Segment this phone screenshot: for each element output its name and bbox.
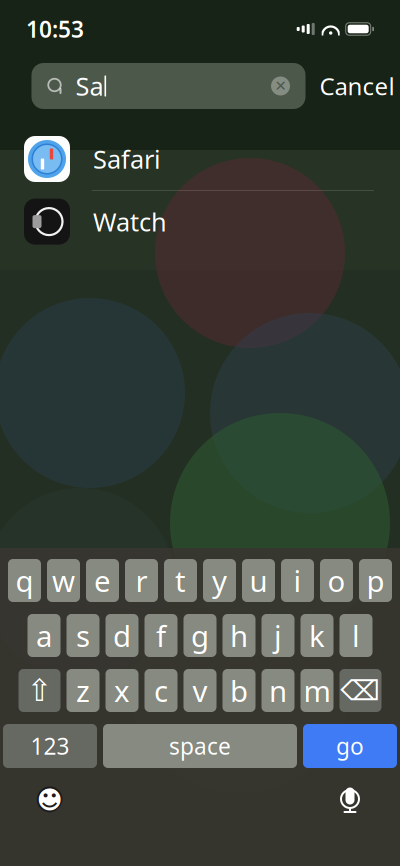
- button[interactable]: r: [125, 559, 158, 602]
- staticText: p: [366, 561, 384, 600]
- staticText: s: [76, 616, 90, 655]
- button[interactable]: o: [320, 559, 353, 602]
- button[interactable]: q: [8, 559, 41, 602]
- staticText: f: [156, 616, 166, 655]
- button[interactable]: c: [144, 669, 177, 712]
- button[interactable]: Cancel: [319, 63, 394, 109]
- button[interactable]: Emoji keyboard: [26, 778, 74, 822]
- staticText: z: [76, 671, 90, 710]
- button[interactable]: i: [281, 559, 314, 602]
- button[interactable]: a: [27, 614, 60, 657]
- button[interactable]: j: [261, 614, 294, 657]
- staticText: j: [274, 616, 282, 655]
- staticText: 10:53: [26, 14, 84, 44]
- staticText: x: [114, 671, 130, 710]
- staticText: e: [94, 561, 111, 600]
- button[interactable]: Shift: [18, 669, 60, 712]
- button[interactable]: e: [86, 559, 119, 602]
- button[interactable]: 123: [3, 724, 97, 768]
- button[interactable]: Watch: [0, 191, 400, 253]
- staticText: o: [327, 561, 345, 600]
- staticText: Sa: [75, 69, 103, 103]
- button[interactable]: x: [105, 669, 138, 712]
- staticText: b: [230, 671, 248, 710]
- button[interactable]: Safari: [0, 128, 400, 191]
- button[interactable]: s: [66, 614, 99, 657]
- staticText: q: [15, 561, 33, 600]
- button[interactable]: z: [66, 669, 99, 712]
- button[interactable]: go: [303, 724, 397, 768]
- button[interactable]: v: [183, 669, 216, 712]
- button[interactable]: b: [222, 669, 255, 712]
- staticText: a: [36, 616, 52, 655]
- button[interactable]: h: [222, 614, 255, 657]
- staticText: c: [154, 671, 168, 710]
- staticText: i: [293, 561, 301, 600]
- staticText: d: [113, 616, 131, 655]
- button[interactable]: n: [261, 669, 294, 712]
- button[interactable]: d: [105, 614, 138, 657]
- button[interactable]: Dictation: [326, 778, 374, 822]
- staticText: t: [175, 561, 186, 600]
- staticText: space: [169, 731, 231, 761]
- staticText: v: [192, 671, 207, 710]
- staticText: k: [309, 616, 325, 655]
- button[interactable]: l: [339, 614, 372, 657]
- staticText: u: [249, 561, 267, 600]
- staticText: Safari: [93, 142, 161, 176]
- staticText: g: [191, 616, 209, 655]
- staticText: ⌫: [340, 675, 380, 706]
- staticText: go: [336, 731, 364, 761]
- button[interactable]: f: [144, 614, 177, 657]
- button[interactable]: t: [164, 559, 197, 602]
- staticText: ✕: [274, 78, 286, 94]
- staticText: ⇧: [26, 673, 52, 708]
- button[interactable]: m: [300, 669, 333, 712]
- staticText: ☺: [34, 783, 65, 817]
- staticText: 123: [30, 731, 69, 761]
- staticText: Cancel: [319, 70, 394, 102]
- staticText: w: [52, 561, 75, 600]
- button[interactable]: Clear text: [265, 71, 295, 101]
- button[interactable]: Delete: [339, 669, 381, 712]
- button[interactable]: k: [300, 614, 333, 657]
- button[interactable]: p: [359, 559, 392, 602]
- button[interactable]: w: [47, 559, 80, 602]
- staticText: Watch: [93, 205, 167, 238]
- staticText: h: [230, 616, 248, 655]
- button[interactable]: space: [103, 724, 297, 768]
- staticText: n: [269, 671, 287, 710]
- staticText: l: [352, 616, 360, 655]
- staticText: y: [212, 561, 227, 600]
- staticText: r: [135, 561, 147, 600]
- button[interactable]: u: [242, 559, 275, 602]
- staticText: m: [303, 671, 330, 710]
- button[interactable]: g: [183, 614, 216, 657]
- button[interactable]: y: [203, 559, 236, 602]
